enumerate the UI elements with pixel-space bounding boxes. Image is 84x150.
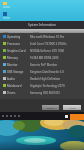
staticText: NVIDIA GeForce GTX 1060 — [30, 49, 65, 53]
button[interactable]: Graphics Card — [0, 47, 84, 54]
button[interactable]: System Information — [0, 21, 84, 29]
staticText: 16384 MB DDR4 2400 — [30, 56, 59, 60]
staticText: Intel Core i7 8700K 3.70GHz — [30, 42, 67, 46]
staticText: USB Storage — [7, 70, 24, 74]
staticText: Gigabyte Technology Z370 — [30, 84, 65, 88]
button[interactable]: USB Storage — [0, 68, 84, 75]
staticText: System Information — [28, 23, 56, 27]
staticText: Kingston DataTraveler 3.0 — [30, 70, 64, 74]
button[interactable]: Drives — [0, 89, 84, 96]
staticText: Microsoft Windows 10 Pro — [30, 35, 65, 39]
staticText: Drives — [7, 91, 16, 95]
button[interactable]: Close — [63, 105, 81, 110]
staticText: Monitor — [7, 63, 18, 67]
button[interactable]: Operating System — [0, 33, 84, 40]
staticText: Close — [69, 106, 76, 109]
staticText: Memory — [7, 56, 19, 60]
staticText: Operating System — [7, 35, 29, 39]
button[interactable]: Audio — [0, 75, 84, 82]
button[interactable]: Report — [42, 105, 59, 110]
button[interactable]: Memory — [0, 54, 84, 61]
staticText: Samsung SSD 860 EVO — [30, 91, 60, 95]
button[interactable]: Processor — [0, 40, 84, 47]
staticText: Value — [33, 30, 40, 33]
staticText: Report — [47, 106, 55, 109]
staticText: Graphics Card — [7, 49, 26, 53]
staticText: Mainboard — [7, 84, 22, 88]
staticText: Field — [3, 30, 9, 33]
staticText: Realtek High Definition — [30, 77, 61, 81]
staticText: Processor — [7, 42, 20, 46]
staticText: Generic PnP Monitor — [30, 63, 58, 67]
staticText: Audio — [7, 77, 15, 81]
button[interactable]: Monitor — [0, 61, 84, 68]
button[interactable]: Mainboard — [0, 82, 84, 89]
